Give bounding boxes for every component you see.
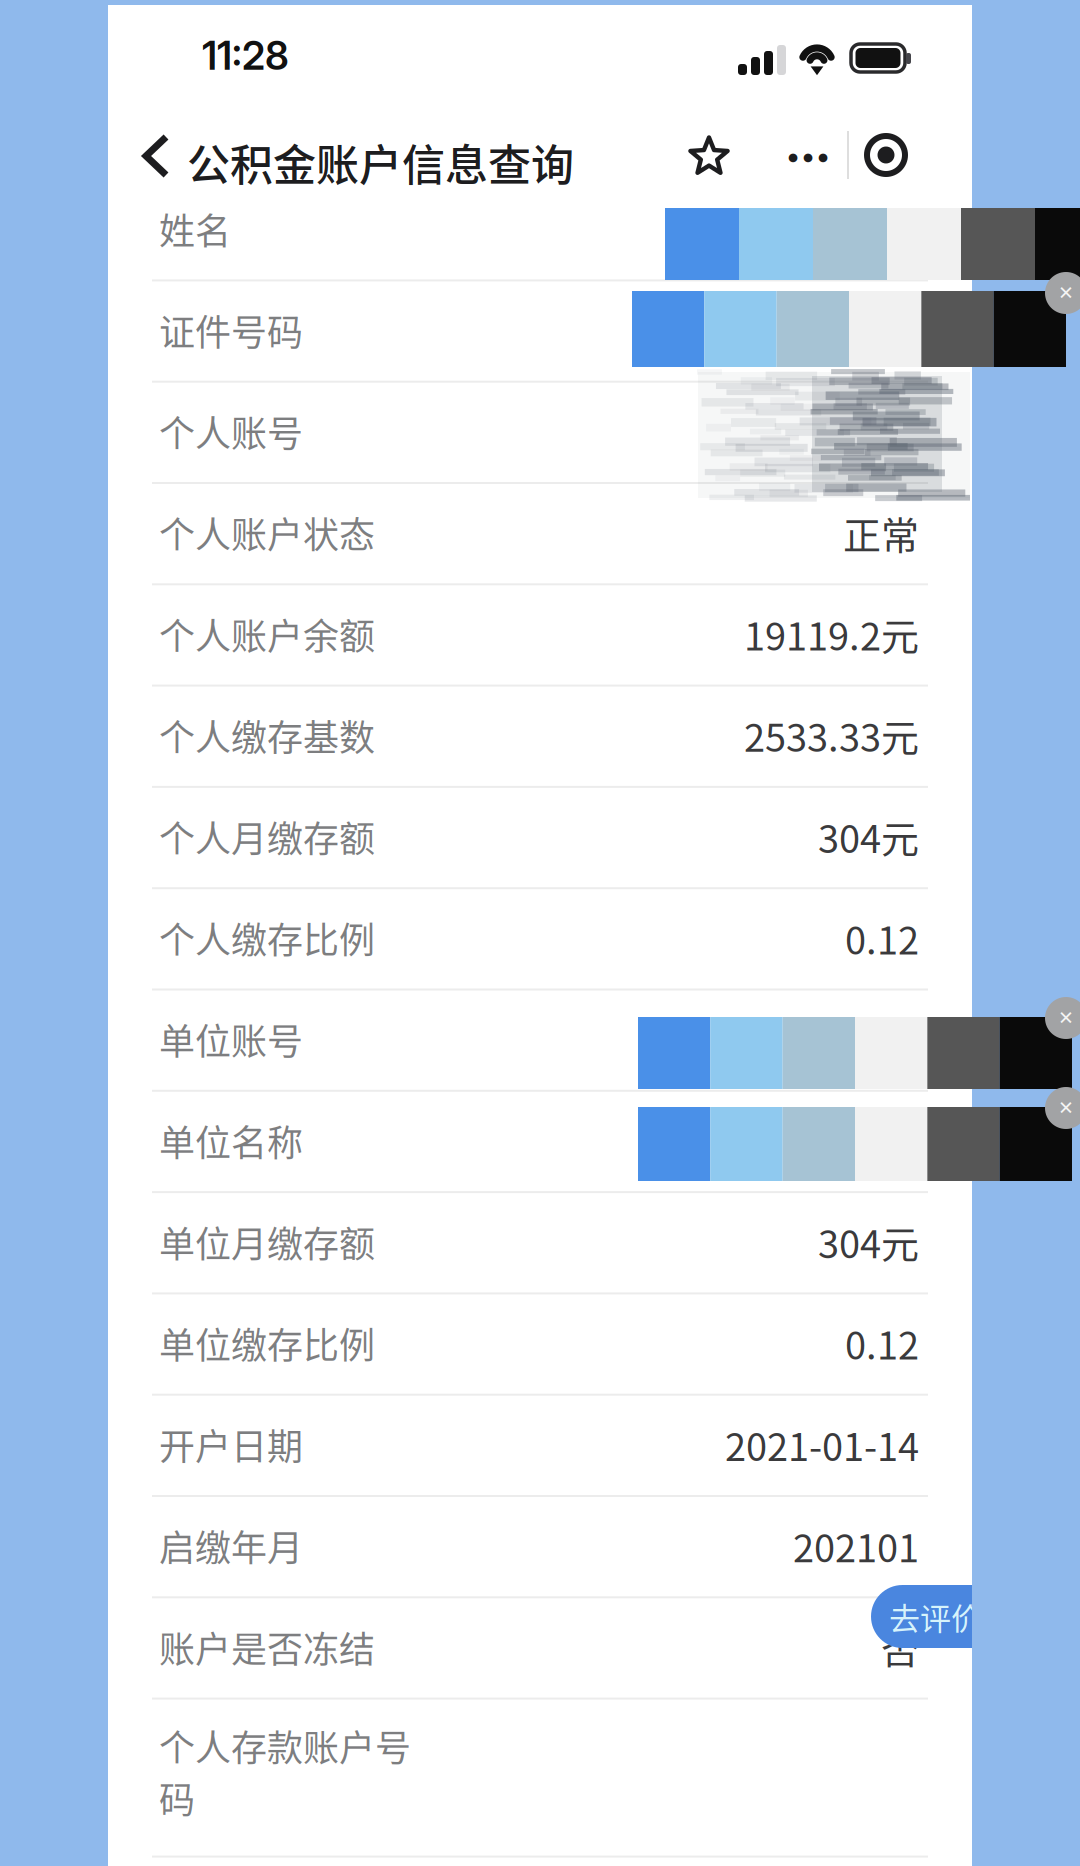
staticText: 2021-01-14 (725, 1417, 919, 1472)
button[interactable]: 个人缴存基数 (108, 685, 972, 786)
staticText: 个人月缴存额 (159, 810, 375, 863)
staticText: 304元 (818, 1214, 919, 1269)
button[interactable]: 个人月缴存额 (108, 786, 972, 887)
button[interactable]: 个人存款账户号 (108, 1720, 972, 1866)
button[interactable]: 启缴年月 (108, 1495, 972, 1596)
staticText: 304元 (818, 809, 919, 864)
staticText: 启缴年月 (159, 1520, 303, 1572)
staticText: ✕ (1058, 1007, 1074, 1029)
staticText: 单位月缴存额 (159, 1216, 375, 1268)
button[interactable]: Close mini program (858, 127, 914, 183)
button[interactable]: 开户日期 (108, 1394, 972, 1495)
button[interactable]: Remove redaction (1045, 997, 1080, 1039)
staticText: 202101 (793, 1518, 919, 1573)
button[interactable]: 单位月缴存额 (108, 1191, 972, 1292)
staticText: 个人账户余额 (159, 608, 375, 660)
staticText: 去评价 (889, 1594, 982, 1639)
staticText: 单位缴存比例 (159, 1317, 375, 1369)
button[interactable]: Favourite (683, 130, 735, 182)
staticText: 公积金账户信息查询 (187, 131, 574, 193)
staticText: 2533.33元 (744, 708, 919, 763)
button[interactable]: 去评价 (871, 1585, 1080, 1648)
button[interactable]: 证件号码 (108, 279, 972, 381)
button[interactable]: 单位缴存比例 (108, 1292, 972, 1394)
button[interactable]: 个人账户状态 (108, 482, 972, 583)
staticText: 姓名 (159, 203, 231, 255)
staticText: **** (847, 302, 919, 357)
button[interactable]: More (770, 128, 846, 184)
staticText: 0.12 (845, 1315, 919, 1370)
staticText: 单位账号 (159, 1013, 303, 1065)
staticText: 账户是否冻结 (159, 1621, 375, 1673)
staticText: 个人账户状态 (159, 507, 375, 559)
staticText: 否 (881, 1619, 919, 1674)
staticText: 证件号码 (159, 304, 303, 356)
button[interactable]: 个人缴存比例 (108, 887, 972, 988)
button[interactable]: Back (138, 128, 174, 184)
staticText: 单位名称 (159, 1114, 303, 1166)
staticText: ✕ (1058, 1097, 1074, 1119)
staticText: ✕ (1058, 282, 1074, 304)
staticText: 码 (159, 1771, 195, 1824)
staticText: 个人缴存比例 (159, 912, 375, 964)
staticText: 都昌- (830, 1113, 919, 1168)
button[interactable]: 账户是否冻结 (108, 1596, 972, 1698)
staticText: 19119.2元 (744, 606, 919, 661)
button[interactable]: 单位账号 (108, 988, 972, 1090)
button[interactable]: 个人账户余额 (108, 583, 972, 685)
staticText: 个人账号 (159, 405, 303, 457)
staticText: 个人缴存基数 (159, 709, 375, 761)
staticText: ••• (785, 139, 830, 173)
staticText: 11:28 (202, 32, 289, 79)
button[interactable]: Remove redaction (1045, 1087, 1080, 1129)
staticText: 开户日期 (159, 1418, 303, 1470)
staticText: 正常 (843, 505, 919, 560)
button[interactable]: Remove redaction (1045, 272, 1080, 314)
button[interactable]: 个人账号 (108, 381, 972, 482)
staticText: 个人存款账户号 (159, 1719, 411, 1772)
staticText: 0.12 (845, 910, 919, 965)
button[interactable]: 姓名 (108, 178, 972, 279)
button[interactable]: 单位名称 (108, 1090, 972, 1191)
